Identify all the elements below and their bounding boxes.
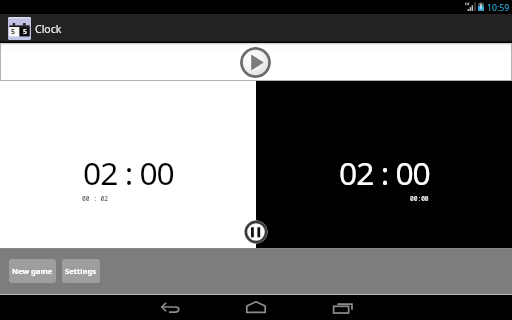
staticText: New game [12, 266, 53, 276]
staticText: Clock [35, 22, 62, 36]
staticText: 00:00 [410, 194, 429, 202]
button[interactable]: Recent apps [319, 294, 367, 320]
button[interactable]: Back [146, 294, 194, 320]
staticText: 00 : 02 [82, 194, 108, 202]
button[interactable]: 02 : 00 [256, 81, 512, 248]
button[interactable]: Pause [244, 220, 268, 244]
button[interactable]: New game [9, 259, 56, 283]
button[interactable]: Home [232, 294, 280, 320]
staticText: 02 : 00 [339, 151, 430, 194]
staticText: 5 [11, 27, 16, 37]
staticText: 02 : 00 [83, 151, 174, 194]
button[interactable]: Settings [62, 259, 100, 283]
staticText: 10:59 [487, 2, 510, 14]
staticText: Settings [65, 266, 97, 276]
button[interactable]: Start [240, 47, 271, 78]
staticText: 5 [23, 27, 28, 37]
button[interactable]: 02 : 00 [0, 81, 256, 248]
